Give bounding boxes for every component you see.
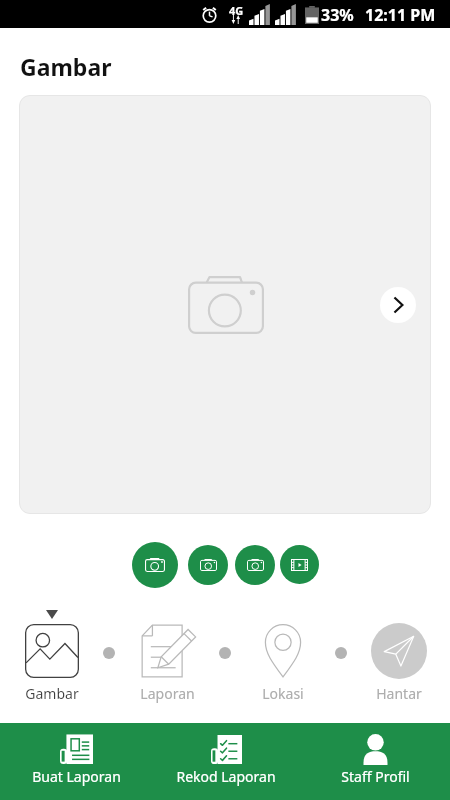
staticText: Lokasi: [262, 684, 304, 703]
button[interactable]: Buat Laporan: [6, 723, 146, 800]
button[interactable]: Choose photo: [188, 545, 228, 585]
button[interactable]: Record video: [280, 545, 319, 584]
staticText: Rekod Laporan: [176, 767, 276, 786]
staticText: Gambar: [25, 684, 79, 703]
button[interactable]: Laporan: [127, 606, 207, 702]
button[interactable]: Staff Profil: [305, 723, 445, 800]
staticText: 4G: [229, 3, 244, 18]
button[interactable]: Lokasi: [243, 606, 323, 702]
button[interactable]: Image preview: [19, 95, 431, 514]
staticText: 33%: [321, 4, 354, 26]
button[interactable]: Rekod Laporan: [156, 723, 296, 800]
button[interactable]: Hantar: [359, 606, 439, 702]
button[interactable]: Next image: [380, 287, 416, 323]
staticText: Buat Laporan: [32, 767, 121, 786]
button[interactable]: Gambar: [12, 606, 92, 702]
button[interactable]: Camera: [235, 545, 275, 585]
button[interactable]: Take photo: [132, 542, 178, 588]
staticText: Laporan: [140, 684, 195, 703]
staticText: Hantar: [376, 684, 422, 703]
staticText: Gambar: [20, 51, 112, 82]
staticText: Staff Profil: [341, 767, 410, 786]
staticText: 12:11 PM: [365, 4, 436, 26]
